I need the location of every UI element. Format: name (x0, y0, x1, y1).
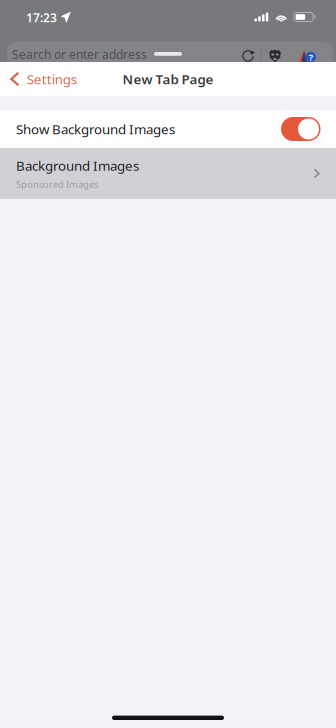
button[interactable]: Settings (0, 62, 85, 96)
button[interactable]: Show Background Images (0, 110, 336, 148)
staticText: Background Images (16, 157, 139, 174)
button[interactable]: Brave Rewards (290, 46, 318, 66)
button[interactable]: Brave Shields (261, 46, 289, 66)
staticText: 17:23 (26, 9, 57, 25)
staticText: Settings (27, 70, 77, 88)
button[interactable]: Background Images (0, 148, 336, 199)
staticText: Search or enter address (12, 46, 147, 62)
staticText: Show Background Images (16, 120, 175, 138)
staticText: New Tab Page (122, 70, 213, 88)
button[interactable]: Reload (234, 46, 262, 66)
staticText: Sponsored Images (16, 178, 98, 190)
staticText: ? (309, 51, 313, 63)
